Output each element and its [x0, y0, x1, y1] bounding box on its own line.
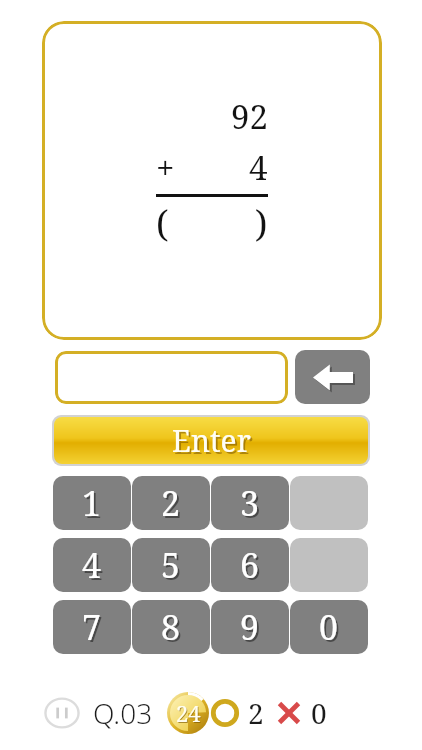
- staticText: 92: [231, 94, 268, 139]
- button: [290, 476, 368, 530]
- staticText: ): [255, 199, 268, 248]
- button: [290, 538, 368, 592]
- staticText: 7: [82, 604, 102, 650]
- staticText: 4: [82, 542, 102, 588]
- button[interactable]: 8: [132, 600, 210, 654]
- staticText: 8: [163, 606, 183, 652]
- button[interactable]: Enter: [54, 417, 368, 464]
- staticText: 24: [176, 698, 201, 728]
- button[interactable]: 5: [132, 538, 210, 592]
- button[interactable]: 7: [53, 600, 131, 654]
- button[interactable]: 4: [53, 538, 131, 592]
- staticText: Enter: [172, 420, 251, 461]
- staticText: 9: [242, 606, 262, 652]
- button[interactable]: 1: [53, 476, 131, 530]
- staticText: 9: [240, 604, 260, 650]
- button[interactable]: 9: [211, 600, 289, 654]
- staticText: 2: [161, 480, 181, 526]
- staticText: (: [156, 199, 169, 248]
- staticText: 0: [319, 604, 339, 650]
- staticText: 3: [242, 482, 262, 528]
- button[interactable]: Answer input: [55, 351, 288, 404]
- button[interactable]: 0: [290, 600, 368, 654]
- staticText: 6: [240, 542, 260, 588]
- staticText: 7: [84, 606, 104, 652]
- staticText: 0: [321, 606, 341, 652]
- staticText: 2: [163, 482, 183, 528]
- staticText: 1: [84, 482, 104, 528]
- staticText: Q.03: [93, 694, 153, 732]
- button[interactable]: 2: [132, 476, 210, 530]
- staticText: 4: [249, 145, 268, 190]
- staticText: 6: [242, 544, 262, 590]
- button[interactable]: 3: [211, 476, 289, 530]
- staticText: 1: [82, 480, 102, 526]
- staticText: 3: [240, 480, 260, 526]
- staticText: +: [156, 145, 175, 190]
- staticText: 24: [177, 699, 202, 729]
- button[interactable]: 6: [211, 538, 289, 592]
- staticText: 2: [248, 694, 264, 732]
- staticText: Enter: [174, 422, 253, 463]
- staticText: 5: [163, 544, 183, 590]
- staticText: 8: [161, 604, 181, 650]
- button[interactable]: Pause: [44, 695, 80, 731]
- button[interactable]: Backspace: [295, 350, 370, 404]
- staticText: 4: [84, 544, 104, 590]
- staticText: 0: [311, 694, 327, 732]
- staticText: 5: [161, 542, 181, 588]
